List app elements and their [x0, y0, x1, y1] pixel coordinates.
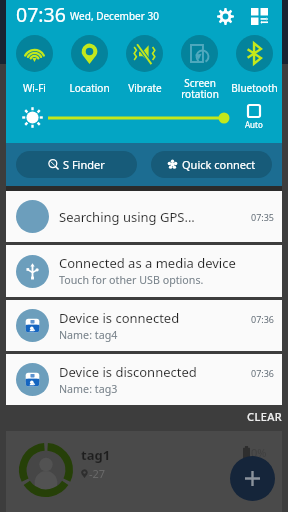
- button[interactable]: Edit quick settings: [248, 5, 270, 27]
- staticText: Vibrate: [128, 81, 162, 95]
- staticText: Quick connect: [182, 157, 256, 172]
- button[interactable]: Connected as a media device: [6, 245, 282, 297]
- button[interactable]: Quick connect: [151, 151, 272, 178]
- button[interactable]: Vibrate: [117, 31, 172, 100]
- staticText: 07:36: [251, 313, 275, 325]
- button[interactable]: Add: [230, 456, 275, 501]
- button[interactable]: Device is connected: [6, 300, 282, 351]
- button[interactable]: S Finder: [16, 151, 137, 178]
- staticText: Wed, December 30: [70, 9, 159, 23]
- staticText: Touch for other USB options.: [59, 273, 204, 288]
- staticText: 0%: [251, 445, 267, 460]
- staticText: 07:36: [16, 1, 66, 28]
- staticText: Bluetooth: [231, 81, 278, 95]
- staticText: Device is disconnected: [59, 363, 197, 381]
- staticText: Screen rotation: [181, 76, 219, 101]
- staticText: Device is connected: [59, 309, 180, 327]
- button[interactable]: Location: [62, 31, 117, 100]
- button[interactable]: Wi-Fi: [6, 31, 62, 100]
- staticText: S Finder: [63, 157, 105, 172]
- staticText: Name: tag3: [59, 382, 118, 397]
- staticText: Connected as a media device: [59, 254, 236, 272]
- staticText: Name: tag4: [59, 328, 118, 343]
- staticText: 07:36: [251, 367, 275, 379]
- staticText: Location: [69, 81, 110, 95]
- button[interactable]: Device is disconnected: [6, 354, 282, 405]
- staticText: Searching using GPS...: [59, 208, 195, 226]
- staticText: tag1: [81, 446, 111, 464]
- button[interactable]: Searching using GPS...: [6, 191, 282, 242]
- button[interactable]: Auto brightness: [247, 104, 261, 118]
- staticText: Auto: [245, 119, 263, 130]
- staticText: -27: [89, 466, 106, 481]
- button[interactable]: CLEAR: [247, 409, 288, 431]
- button[interactable]: Bluetooth: [227, 31, 282, 100]
- button[interactable]: Settings: [214, 5, 236, 27]
- staticText: 07:35: [251, 211, 275, 223]
- staticText: Wi-Fi: [23, 81, 46, 95]
- button[interactable]: Screen rotation: [172, 31, 227, 100]
